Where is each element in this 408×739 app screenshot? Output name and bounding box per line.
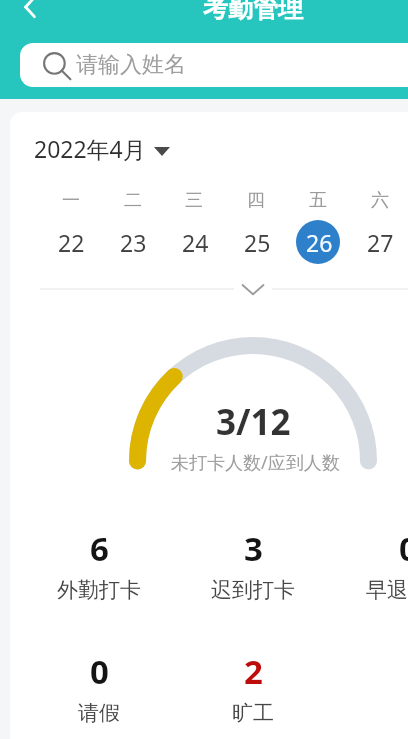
button[interactable]: 请输入姓名 xyxy=(20,43,408,87)
button[interactable]: 25 xyxy=(236,221,279,264)
staticText: 6 xyxy=(90,526,109,571)
button[interactable]: 0 xyxy=(332,526,408,626)
button[interactable]: Back xyxy=(8,0,52,29)
button[interactable]: 26 xyxy=(296,220,340,264)
staticText: 2022年4月 xyxy=(34,133,146,164)
staticText: 3/12 xyxy=(216,398,291,446)
staticText: 24 xyxy=(182,227,209,258)
staticText: 27 xyxy=(367,227,394,258)
button[interactable] xyxy=(40,278,408,300)
staticText: 23 xyxy=(120,227,147,258)
staticText: 早退打卡 xyxy=(366,577,408,603)
button[interactable]: 6 xyxy=(23,526,175,626)
staticText: 一 xyxy=(62,189,80,212)
staticText: 六 xyxy=(371,189,389,212)
button[interactable]: 2022年4月 xyxy=(34,133,170,164)
staticText: 25 xyxy=(244,227,271,258)
staticText: 二 xyxy=(124,189,142,212)
staticText: 22 xyxy=(58,227,85,258)
staticText: 0 xyxy=(399,526,408,571)
staticText: 考勤管理 xyxy=(203,0,303,24)
staticText: 0 xyxy=(90,649,109,694)
staticText: 四 xyxy=(247,189,265,212)
staticText: 三 xyxy=(185,189,203,212)
button[interactable]: 23 xyxy=(112,221,155,264)
button[interactable]: 27 xyxy=(359,221,402,264)
button[interactable]: 3 xyxy=(177,526,329,626)
staticText: 3 xyxy=(244,526,263,571)
staticText: 旷工 xyxy=(232,700,274,726)
staticText: 外勤打卡 xyxy=(57,577,141,603)
button[interactable]: 2 xyxy=(177,649,329,739)
button[interactable]: 22 xyxy=(50,221,93,264)
staticText: 未打卡人数/应到人数 xyxy=(171,450,340,475)
staticText: 请输入姓名 xyxy=(76,51,186,79)
button[interactable]: 24 xyxy=(174,221,217,264)
staticText: 五 xyxy=(309,189,327,212)
button[interactable]: 0 xyxy=(23,649,175,739)
staticText: 26 xyxy=(306,227,333,258)
staticText: 迟到打卡 xyxy=(211,577,295,603)
staticText: 请假 xyxy=(78,700,120,726)
staticText: 2 xyxy=(244,649,263,694)
